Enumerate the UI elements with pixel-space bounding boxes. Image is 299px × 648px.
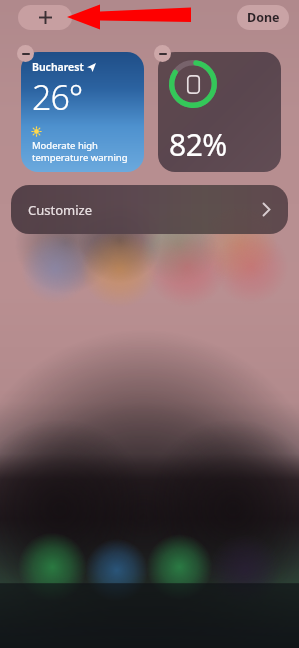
staticText: 82% xyxy=(169,124,227,165)
staticText: Customize xyxy=(28,201,92,219)
button[interactable]: Bucharest xyxy=(21,52,144,172)
staticText: Done xyxy=(247,9,280,26)
button[interactable]: Remove widget xyxy=(17,45,34,62)
staticText: Bucharest xyxy=(32,60,84,74)
button[interactable]: Customize xyxy=(11,185,288,234)
staticText: 26° xyxy=(32,74,83,120)
button[interactable]: 82% xyxy=(158,52,281,172)
button[interactable]: Add widget xyxy=(18,5,72,30)
button[interactable]: Done xyxy=(237,5,289,30)
staticText: Moderate high temperature warning xyxy=(32,139,128,164)
button[interactable]: Remove widget xyxy=(154,45,171,62)
